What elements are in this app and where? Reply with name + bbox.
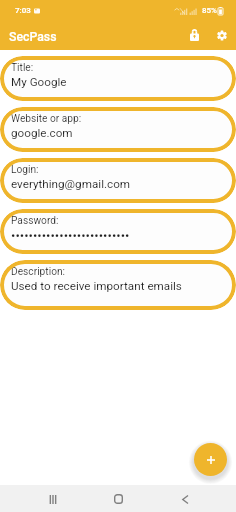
button[interactable]: Login: bbox=[0, 158, 236, 203]
button[interactable]: Title: bbox=[0, 56, 236, 101]
button[interactable]: Password: bbox=[0, 209, 236, 254]
staticText: Title: bbox=[11, 62, 34, 74]
staticText: Login: bbox=[11, 164, 39, 176]
button[interactable]: Website or app: bbox=[0, 107, 236, 152]
button[interactable]: Home bbox=[105, 486, 131, 512]
staticText: 7:03 bbox=[15, 6, 31, 15]
staticText: Password: bbox=[11, 215, 59, 227]
staticText: My Google bbox=[11, 75, 67, 89]
staticText: ••••••••••••••••••••••••••• bbox=[11, 228, 130, 243]
button[interactable]: Settings bbox=[208, 21, 236, 49]
button[interactable]: Lock bbox=[180, 21, 208, 49]
staticText: Description: bbox=[11, 266, 66, 278]
button[interactable]: Add password bbox=[194, 443, 227, 476]
staticText: everything@gmail.com bbox=[11, 177, 131, 191]
button[interactable]: Back bbox=[172, 486, 198, 512]
staticText: Website or app: bbox=[11, 113, 82, 125]
staticText: 85% bbox=[202, 6, 217, 15]
staticText: google.com bbox=[11, 126, 73, 140]
staticText: SecPass bbox=[9, 30, 57, 44]
staticText: Used to receive important emails bbox=[11, 279, 182, 293]
button[interactable]: Description: bbox=[0, 260, 236, 310]
button[interactable]: Recent apps bbox=[40, 486, 66, 512]
